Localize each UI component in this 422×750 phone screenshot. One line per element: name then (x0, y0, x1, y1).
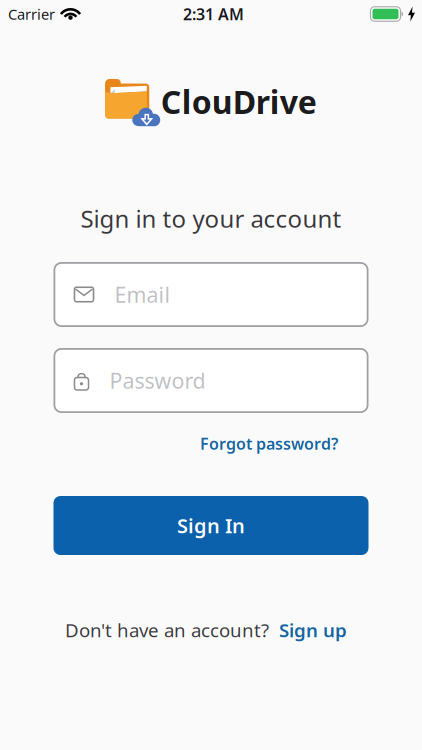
staticText: Carrier (8, 4, 55, 24)
staticText: Sign In (177, 512, 245, 539)
staticText: Password (109, 366, 205, 395)
staticText: 2:31 AM (183, 3, 244, 25)
staticText: Forgot password? (200, 433, 338, 454)
staticText: Sign up (279, 618, 347, 642)
button[interactable]: Password (53, 348, 368, 413)
button[interactable]: Email (53, 262, 368, 327)
button[interactable]: Sign In (53, 496, 368, 555)
button[interactable]: Forgot password? (200, 433, 338, 454)
staticText: Email (114, 280, 170, 309)
staticText: Sign in to your account (80, 203, 341, 234)
button[interactable]: Sign up (279, 618, 347, 642)
staticText: Don't have an account? (65, 618, 269, 642)
staticText: ClouDrive (161, 80, 317, 123)
